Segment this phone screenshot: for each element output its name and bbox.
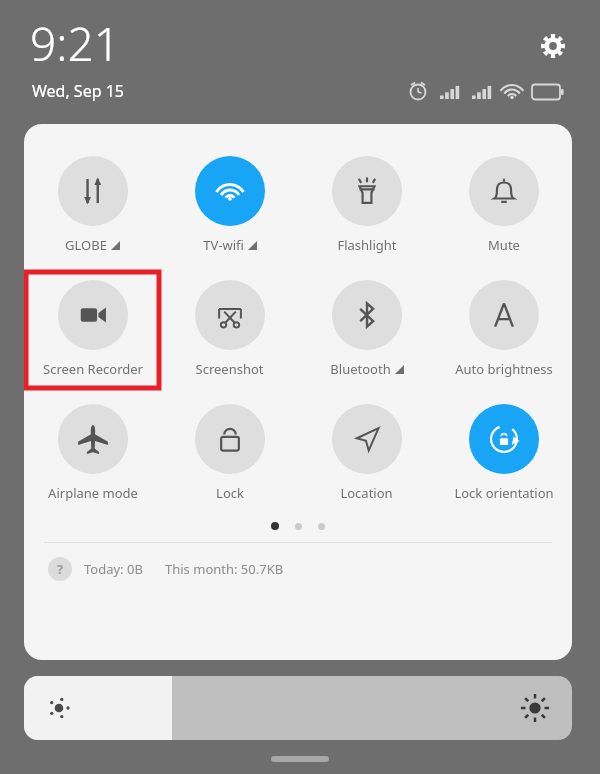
button[interactable]: Airplane mode	[27, 402, 158, 504]
button[interactable]: Lock orientation	[438, 402, 569, 504]
staticText: Wed, Sep 15	[32, 80, 124, 102]
button[interactable]: Screenshot	[164, 278, 295, 380]
staticText: TV-wifi	[203, 236, 244, 254]
staticText: Mute	[488, 236, 520, 254]
staticText: Lock	[216, 484, 244, 502]
staticText: Lock orientation	[454, 484, 554, 502]
button[interactable]: Lock	[164, 402, 295, 504]
staticText: Auto brightness	[455, 360, 553, 378]
button[interactable]: Location	[301, 402, 432, 504]
button[interactable]: Mute	[438, 154, 569, 256]
staticText: Location	[340, 484, 393, 502]
button[interactable]: Brightness	[24, 676, 572, 740]
staticText: GLOBE	[65, 236, 107, 254]
staticText: Screenshot	[195, 360, 264, 378]
staticText: Flashlight	[337, 236, 397, 254]
button[interactable]: Bluetooth	[301, 278, 432, 380]
staticText: 9:21	[30, 12, 121, 75]
button[interactable]: TV-wifi	[164, 154, 295, 256]
button[interactable]: ?	[24, 543, 572, 595]
button[interactable]: Settings	[533, 26, 573, 66]
staticText: This month: 50.7KB	[165, 560, 284, 578]
button[interactable]: Auto brightness	[438, 278, 569, 380]
staticText: Airplane mode	[48, 484, 138, 502]
staticText: Screen Recorder	[43, 360, 143, 378]
staticText: ?	[57, 560, 64, 578]
button[interactable]: Flashlight	[301, 154, 432, 256]
staticText: Today: 0B	[84, 560, 143, 578]
staticText: Bluetooth	[330, 360, 391, 378]
button[interactable]: GLOBE	[27, 154, 158, 256]
button[interactable]: Screen Recorder	[27, 278, 158, 380]
